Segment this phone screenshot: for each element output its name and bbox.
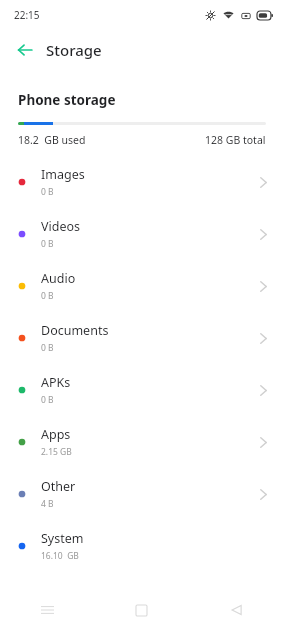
staticText: 18.2 GB used — [18, 133, 86, 147]
button[interactable]: Audio — [0, 260, 284, 312]
staticText: Images — [41, 166, 85, 183]
staticText: Storage — [46, 40, 102, 60]
staticText: 128 GB total — [205, 133, 266, 147]
staticText: Other — [41, 478, 76, 495]
button[interactable]: Videos — [0, 208, 284, 260]
button[interactable]: APKs — [0, 364, 284, 416]
button[interactable]: Recent apps — [0, 590, 94, 630]
staticText: 0 B — [41, 394, 54, 406]
staticText: Audio — [41, 270, 76, 287]
button[interactable]: Other — [0, 468, 284, 520]
staticText: Apps — [41, 426, 71, 443]
staticText: Videos — [41, 218, 81, 235]
button[interactable]: Back — [11, 36, 39, 64]
staticText: 22:15 — [14, 8, 40, 22]
staticText: 0 B — [41, 342, 54, 354]
staticText: Phone storage — [18, 91, 116, 109]
button[interactable]: System — [0, 520, 284, 572]
staticText: 4 B — [41, 498, 54, 510]
staticText: 16.10 GB — [41, 550, 79, 562]
staticText: 0 B — [41, 290, 54, 302]
staticText: System — [41, 530, 84, 547]
staticText: APKs — [41, 374, 71, 391]
staticText: Documents — [41, 322, 109, 339]
button[interactable]: Apps — [0, 416, 284, 468]
staticText: 0 B — [41, 186, 54, 198]
staticText: 2.15 GB — [41, 446, 72, 458]
button[interactable]: Images — [0, 156, 284, 208]
staticText: 0 B — [41, 238, 54, 250]
button[interactable]: Documents — [0, 312, 284, 364]
